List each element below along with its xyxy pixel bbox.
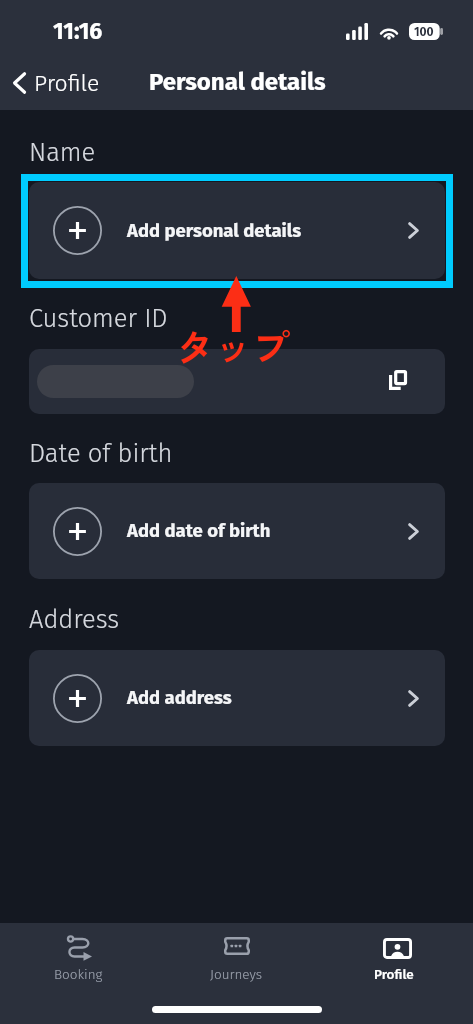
staticText: タップ (176, 318, 291, 373)
staticText: Booking (54, 966, 103, 982)
button[interactable]: Journeys (157, 923, 315, 983)
staticText: Add address (127, 687, 232, 709)
button[interactable]: Add personal details (29, 182, 445, 279)
staticText: Address (29, 604, 119, 635)
button[interactable]: Add address (29, 650, 445, 746)
staticText: 100 (414, 25, 434, 39)
staticText: Profile (374, 966, 414, 982)
button[interactable]: Copy customer ID (382, 365, 416, 399)
button[interactable]: Add date of birth (29, 483, 445, 579)
staticText: Add personal details (127, 220, 302, 242)
staticText: Personal details (149, 68, 326, 97)
staticText: Profile (34, 69, 100, 97)
staticText: Add date of birth (127, 520, 271, 542)
staticText: 11:16 (53, 17, 103, 45)
staticText: Customer ID (29, 303, 168, 334)
staticText: Name (29, 137, 96, 168)
button[interactable]: Profile (0, 61, 112, 105)
staticText: Date of birth (29, 438, 173, 469)
staticText: Journeys (210, 966, 263, 982)
button[interactable]: Booking (0, 923, 157, 983)
button[interactable]: Profile (315, 923, 473, 983)
